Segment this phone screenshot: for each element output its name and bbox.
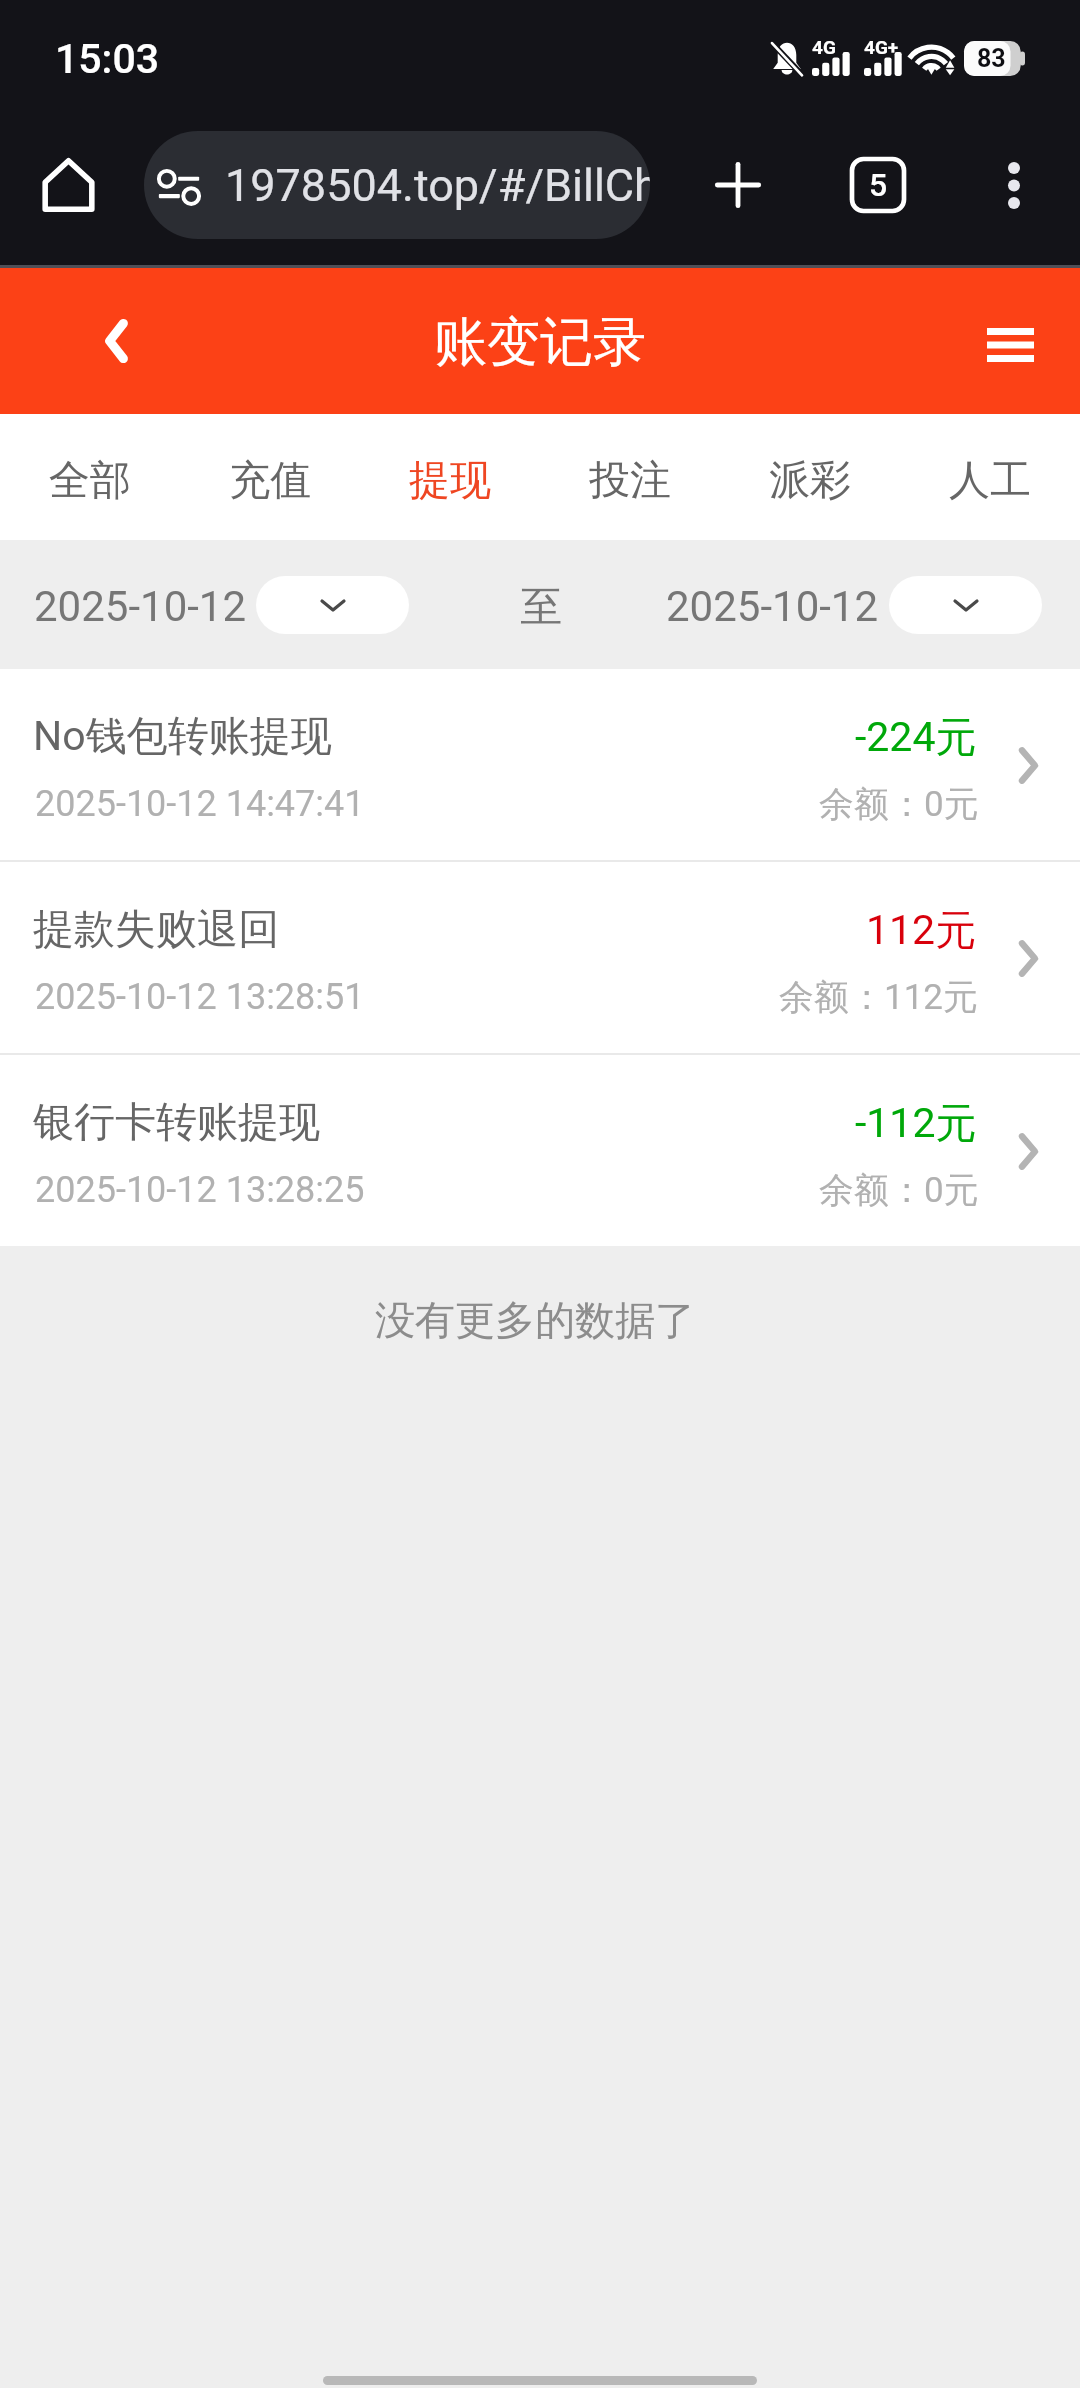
button[interactable]: Choose date xyxy=(256,576,409,634)
staticText: 余额：0元 xyxy=(819,782,979,826)
staticText: 充值 xyxy=(229,455,311,507)
button[interactable]: No钱包转账提现 xyxy=(0,669,1080,860)
staticText: 2025-10-12 13:28:25 xyxy=(35,1169,365,1211)
staticText: 2025-10-12 13:28:51 xyxy=(35,976,365,1018)
staticText: 5 xyxy=(869,166,888,204)
staticText: -112元 xyxy=(855,1098,977,1150)
staticText: 15:03 xyxy=(55,35,160,83)
staticText: 2025-10-12 14:47:41 xyxy=(35,783,365,825)
staticText: 余额：0元 xyxy=(819,1168,979,1212)
staticText: 提款失败退回 xyxy=(33,904,279,956)
staticText: 人工 xyxy=(949,455,1031,507)
button[interactable]: 充值 xyxy=(180,414,360,540)
staticText: 投注 xyxy=(589,455,671,507)
button[interactable]: 1978504.top/#/BillCh xyxy=(144,131,650,239)
staticText: 2025-10-12 xyxy=(666,582,879,631)
staticText: 全部 xyxy=(49,455,131,507)
button[interactable]: Open tabs xyxy=(832,139,924,231)
button[interactable]: Menu xyxy=(964,295,1056,387)
staticText: 银行卡转账提现 xyxy=(33,1097,320,1149)
staticText: 4G+ xyxy=(864,36,899,58)
staticText: 账变记录 xyxy=(434,309,646,376)
staticText: 83 xyxy=(977,44,1006,73)
button[interactable]: 投注 xyxy=(540,414,720,540)
staticText: 112元 xyxy=(866,905,977,957)
button[interactable]: 提现 xyxy=(360,414,540,540)
staticText: 提现 xyxy=(409,455,491,507)
button[interactable]: New tab xyxy=(692,139,784,231)
staticText: 余额：112元 xyxy=(779,975,979,1019)
staticText: 1978504.top/#/BillCh xyxy=(225,159,650,212)
button[interactable]: 银行卡转账提现 xyxy=(0,1055,1080,1246)
staticText: No钱包转账提现 xyxy=(33,711,332,763)
staticText: 至 xyxy=(520,581,562,634)
button[interactable]: Home xyxy=(22,139,114,231)
button[interactable]: 提款失败退回 xyxy=(0,862,1080,1053)
button[interactable]: 派彩 xyxy=(720,414,900,540)
button[interactable]: Back xyxy=(70,295,162,387)
staticText: 没有更多的数据了 xyxy=(375,1295,695,1345)
staticText: 4G xyxy=(812,36,836,58)
staticText: 派彩 xyxy=(769,455,851,507)
button[interactable]: More options xyxy=(968,139,1060,231)
button[interactable]: 全部 xyxy=(0,414,180,540)
button[interactable]: 人工 xyxy=(900,414,1080,540)
staticText: 2025-10-12 xyxy=(34,582,247,631)
staticText: -224元 xyxy=(855,712,977,764)
button[interactable]: Choose date xyxy=(889,576,1042,634)
